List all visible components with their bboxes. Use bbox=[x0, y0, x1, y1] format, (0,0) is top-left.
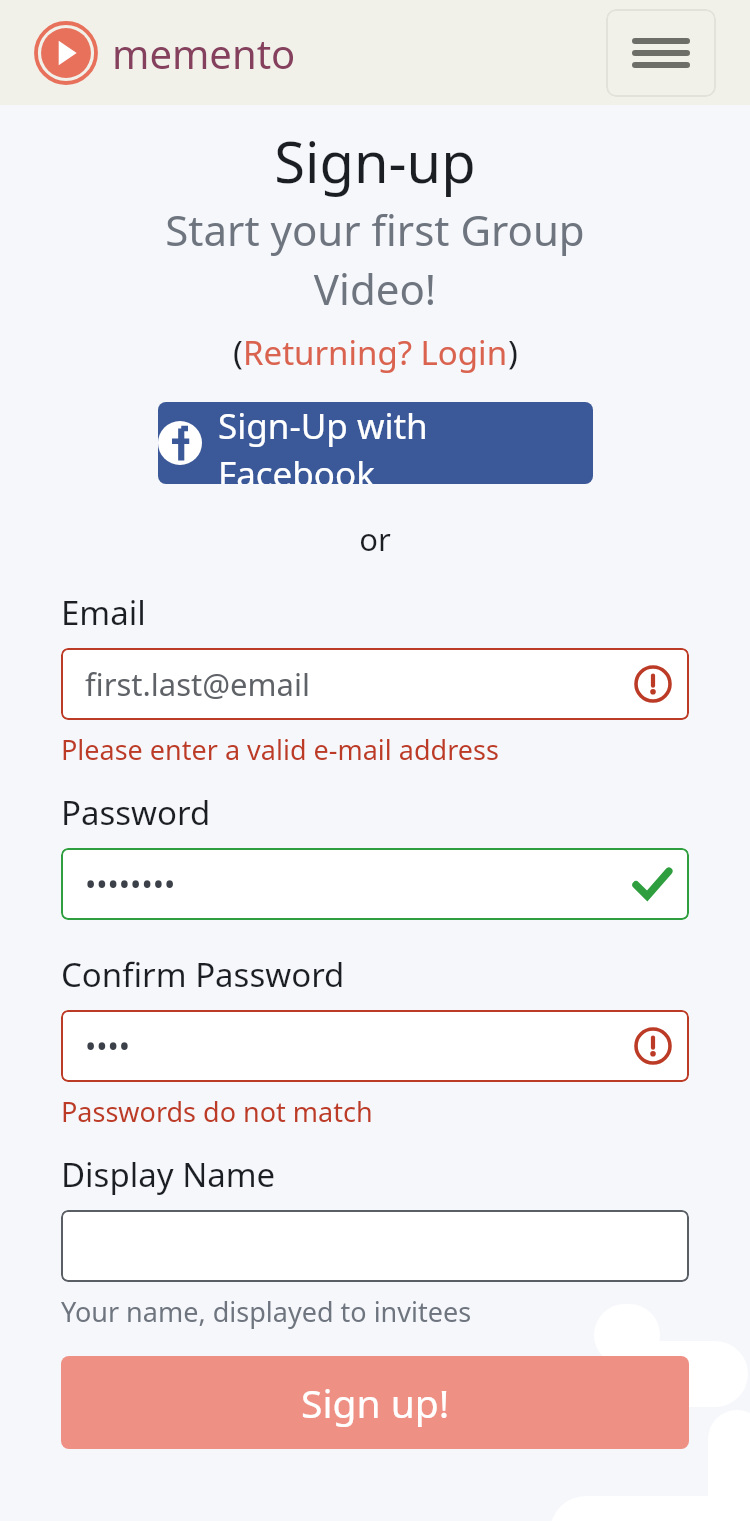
staticText: Your name, displayed to invitees bbox=[61, 1293, 472, 1330]
staticText: memento bbox=[112, 26, 296, 80]
staticText: ( bbox=[233, 330, 243, 375]
staticText: Start your first Group Video! bbox=[0, 201, 750, 318]
staticText: •••• bbox=[85, 1026, 131, 1067]
button[interactable]: Sign-Up with Facebook bbox=[158, 402, 593, 484]
staticText: Please enter a valid e-mail address bbox=[61, 731, 499, 768]
button[interactable]: •••••••• bbox=[61, 848, 689, 920]
button[interactable] bbox=[61, 1210, 689, 1282]
button[interactable]: Returning? Login bbox=[243, 330, 508, 375]
staticText: Display Name bbox=[61, 1152, 276, 1197]
button[interactable]: Sign up! bbox=[61, 1356, 689, 1449]
staticText: Confirm Password bbox=[61, 952, 345, 997]
staticText: ) bbox=[508, 330, 518, 375]
staticText: Sign-up bbox=[0, 123, 750, 199]
staticText: Password bbox=[61, 790, 211, 835]
staticText: first.last@email bbox=[85, 663, 310, 705]
staticText: Returning? Login bbox=[243, 330, 508, 375]
button[interactable]: Menu bbox=[606, 9, 716, 97]
button[interactable]: first.last@email bbox=[61, 648, 689, 720]
staticText: Sign-Up with Facebook bbox=[218, 402, 593, 484]
staticText: •••••••• bbox=[85, 864, 176, 905]
staticText: Passwords do not match bbox=[61, 1093, 373, 1130]
staticText: Sign up! bbox=[301, 1376, 450, 1429]
staticText: Email bbox=[61, 590, 146, 635]
button[interactable]: •••• bbox=[61, 1010, 689, 1082]
staticText: or bbox=[0, 518, 750, 560]
